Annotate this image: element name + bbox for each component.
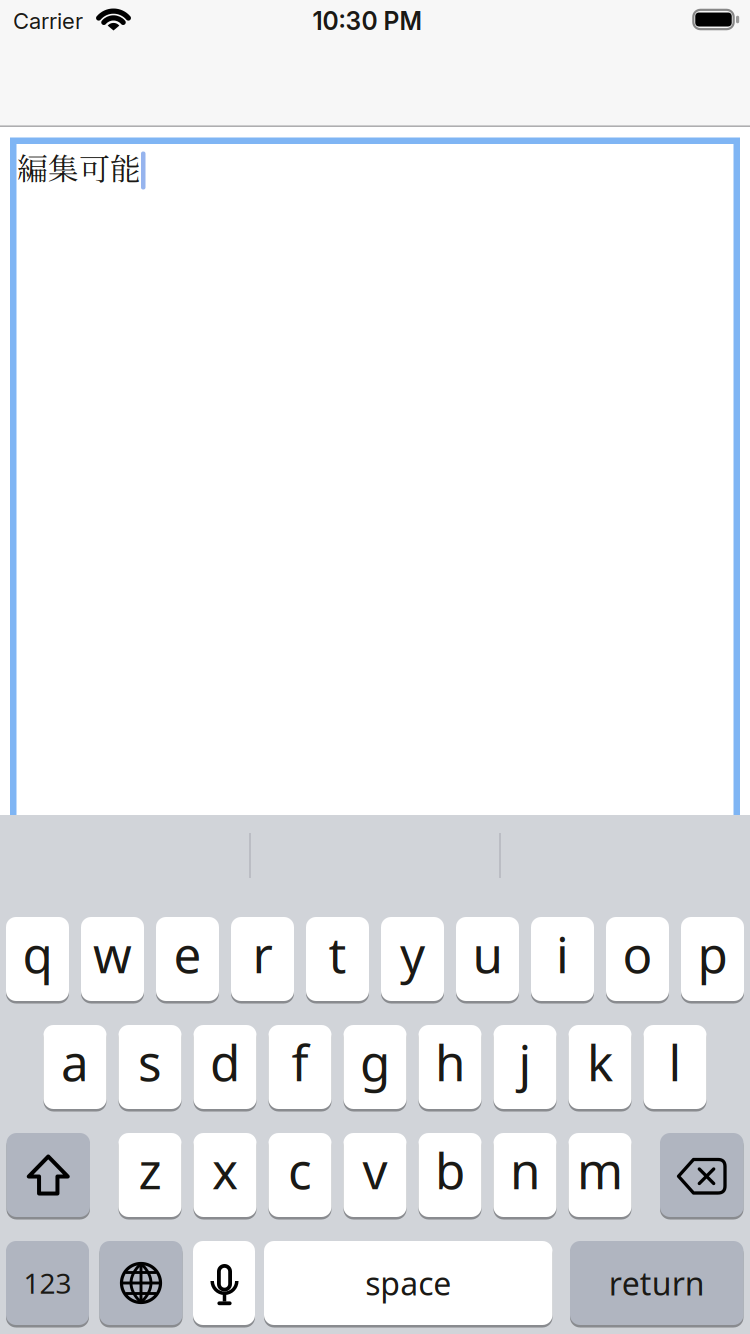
button[interactable]: q <box>6 917 69 1003</box>
staticText: s <box>138 1029 162 1095</box>
button[interactable]: f <box>268 1025 331 1111</box>
staticText: z <box>138 1137 161 1203</box>
button[interactable]: t <box>306 917 369 1003</box>
staticText: v <box>362 1137 387 1203</box>
button[interactable]: u <box>456 917 519 1003</box>
button[interactable]: o <box>606 917 669 1003</box>
button[interactable]: w <box>81 917 144 1003</box>
staticText: 10:30 PM <box>312 6 421 36</box>
staticText: l <box>668 1029 681 1095</box>
staticText: d <box>210 1029 240 1095</box>
staticText: k <box>587 1029 613 1095</box>
staticText: p <box>697 921 727 987</box>
button[interactable]: e <box>156 917 219 1003</box>
button[interactable]: z <box>118 1133 181 1219</box>
staticText: return <box>609 1262 705 1304</box>
button[interactable]: x <box>193 1133 256 1219</box>
button[interactable]: n <box>493 1133 556 1219</box>
button[interactable]: m <box>568 1133 631 1219</box>
staticText: i <box>556 921 569 987</box>
staticText: 編集可能 <box>17 145 141 189</box>
staticText: j <box>518 1029 531 1095</box>
staticText: b <box>435 1137 465 1203</box>
button[interactable]: h <box>418 1025 481 1111</box>
button[interactable]: v <box>343 1133 406 1219</box>
staticText: g <box>360 1029 390 1095</box>
staticText: c <box>288 1137 312 1203</box>
button[interactable]: 編集可能 <box>10 137 740 815</box>
button[interactable]: r <box>231 917 294 1003</box>
staticText: n <box>510 1137 540 1203</box>
button[interactable]: c <box>268 1133 331 1219</box>
button[interactable]: d <box>193 1025 256 1111</box>
button[interactable]: b <box>418 1133 481 1219</box>
staticText: a <box>61 1029 89 1095</box>
button[interactable]: i <box>531 917 594 1003</box>
button[interactable] <box>99 1241 182 1327</box>
staticText: f <box>291 1029 308 1095</box>
staticText: 123 <box>23 1264 71 1302</box>
button[interactable]: return <box>570 1241 743 1327</box>
staticText: space <box>365 1262 451 1304</box>
button[interactable] <box>193 1241 255 1327</box>
button[interactable]: 123 <box>6 1241 89 1327</box>
button[interactable]: k <box>568 1025 631 1111</box>
staticText: e <box>173 921 201 987</box>
staticText: m <box>577 1137 623 1203</box>
button[interactable] <box>660 1133 743 1219</box>
staticText: u <box>472 921 502 987</box>
staticText: Carrier <box>13 8 83 34</box>
button[interactable]: a <box>43 1025 106 1111</box>
staticText: r <box>252 921 272 987</box>
button[interactable]: l <box>643 1025 706 1111</box>
staticText: y <box>400 921 425 987</box>
button[interactable]: y <box>381 917 444 1003</box>
staticText: o <box>622 921 652 987</box>
staticText: w <box>93 921 132 987</box>
button[interactable]: space <box>264 1241 552 1327</box>
button[interactable]: s <box>118 1025 181 1111</box>
staticText: x <box>212 1137 238 1203</box>
button[interactable]: g <box>343 1025 406 1111</box>
staticText: q <box>22 921 52 987</box>
button[interactable]: j <box>493 1025 556 1111</box>
button[interactable]: p <box>681 917 744 1003</box>
button[interactable] <box>6 1133 90 1219</box>
staticText: t <box>328 921 346 987</box>
staticText: h <box>435 1029 465 1095</box>
